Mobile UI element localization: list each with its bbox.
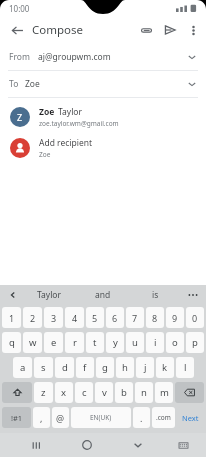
staticText: 1: [9, 312, 15, 324]
button[interactable]: ,: [33, 407, 50, 428]
button[interactable]: Shift: [2, 382, 32, 403]
staticText: ,: [40, 412, 43, 424]
staticText: zoe.taylor.wm@gmail.com: [39, 119, 119, 128]
button[interactable]: Next: [177, 407, 204, 428]
button[interactable]: o: [166, 332, 184, 353]
staticText: u: [132, 336, 138, 349]
staticText: k: [162, 361, 168, 374]
button[interactable]: 4: [65, 307, 84, 328]
staticText: !#1: [11, 413, 23, 423]
button[interactable]: EN(UK): [71, 407, 131, 428]
staticText: v: [102, 386, 107, 399]
button[interactable]: i: [146, 332, 164, 353]
button[interactable]: Taylor: [22, 285, 76, 305]
staticText: o: [172, 336, 178, 349]
button[interactable]: More options: [182, 19, 204, 41]
staticText: b: [121, 386, 127, 399]
button[interactable]: Z: [0, 102, 206, 132]
button[interactable]: z: [34, 382, 53, 403]
button[interactable]: Back: [126, 433, 150, 457]
button[interactable]: @: [52, 407, 69, 428]
button[interactable]: and: [76, 285, 129, 305]
staticText: x: [61, 386, 67, 399]
button[interactable]: 0: [186, 307, 204, 328]
staticText: Taylor: [58, 106, 82, 118]
staticText: 9: [172, 312, 178, 324]
staticText: j: [144, 361, 147, 374]
staticText: 5: [92, 312, 98, 324]
staticText: To: [9, 78, 19, 90]
button[interactable]: Home: [75, 433, 99, 457]
button[interactable]: From: [0, 44, 206, 70]
staticText: z: [41, 386, 46, 399]
button[interactable]: y: [106, 332, 124, 353]
button[interactable]: .com: [152, 407, 175, 428]
button[interactable]: Attach: [134, 18, 158, 42]
button[interactable]: n: [135, 382, 153, 403]
button[interactable]: Hide keyboard: [173, 435, 193, 455]
button[interactable]: g: [96, 357, 114, 378]
button[interactable]: x: [55, 382, 73, 403]
button[interactable]: Add recipient: [0, 132, 206, 164]
staticText: 3: [51, 312, 57, 324]
button[interactable]: j: [136, 357, 154, 378]
button[interactable]: 2: [23, 307, 42, 328]
button[interactable]: Previous suggestions: [5, 287, 21, 303]
button[interactable]: .: [133, 407, 150, 428]
staticText: p: [192, 336, 198, 349]
button[interactable]: t: [86, 332, 104, 353]
button[interactable]: Send: [158, 18, 182, 42]
button[interactable]: d: [55, 357, 74, 378]
staticText: q: [9, 336, 15, 349]
button[interactable]: p: [186, 332, 204, 353]
staticText: s: [41, 361, 46, 374]
staticText: m: [160, 386, 169, 399]
staticText: 8: [152, 312, 158, 324]
button[interactable]: 9: [166, 307, 184, 328]
button[interactable]: 6: [106, 307, 124, 328]
button[interactable]: h: [116, 357, 134, 378]
staticText: and: [95, 289, 111, 301]
button[interactable]: w: [23, 332, 42, 353]
button[interactable]: k: [156, 357, 174, 378]
button[interactable]: a: [13, 357, 32, 378]
staticText: n: [141, 386, 147, 399]
button[interactable]: is: [129, 285, 182, 305]
staticText: e: [51, 336, 57, 349]
staticText: aj@groupwm.com: [38, 51, 111, 63]
staticText: g: [102, 361, 108, 374]
button[interactable]: l: [176, 357, 194, 378]
button[interactable]: v: [95, 382, 113, 403]
button[interactable]: To: [0, 71, 206, 97]
button[interactable]: r: [65, 332, 84, 353]
button[interactable]: 7: [126, 307, 144, 328]
staticText: 7: [132, 312, 138, 324]
button[interactable]: More suggestions: [184, 286, 202, 304]
button[interactable]: Back: [6, 19, 28, 41]
staticText: From: [9, 51, 30, 63]
button[interactable]: c: [75, 382, 93, 403]
button[interactable]: 3: [44, 307, 63, 328]
button[interactable]: 5: [86, 307, 104, 328]
staticText: c: [82, 386, 87, 399]
button[interactable]: Backspace: [175, 382, 204, 403]
button[interactable]: m: [155, 382, 173, 403]
button[interactable]: !#1: [2, 407, 31, 428]
staticText: is: [152, 289, 159, 301]
staticText: Zoe: [39, 150, 51, 159]
button[interactable]: Recents: [24, 433, 48, 457]
button[interactable]: b: [115, 382, 133, 403]
button[interactable]: 8: [146, 307, 164, 328]
staticText: 6: [112, 312, 118, 324]
staticText: .com: [156, 413, 171, 422]
button[interactable]: 1: [2, 307, 21, 328]
button[interactable]: f: [76, 357, 94, 378]
staticText: @: [56, 412, 65, 424]
button[interactable]: s: [34, 357, 53, 378]
staticText: w: [29, 336, 37, 349]
button[interactable]: q: [2, 332, 21, 353]
button[interactable]: e: [44, 332, 63, 353]
staticText: Z: [17, 111, 23, 123]
button[interactable]: u: [126, 332, 144, 353]
staticText: l: [184, 361, 187, 374]
